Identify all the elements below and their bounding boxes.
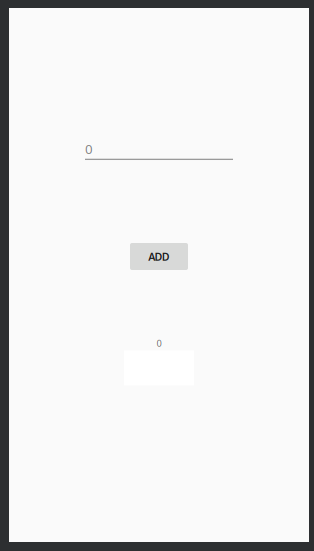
button[interactable]: ADD <box>130 243 188 270</box>
staticText: ADD <box>148 249 170 264</box>
staticText: 0 <box>156 337 161 349</box>
staticText: 0 <box>85 140 93 158</box>
button[interactable]: Number to add <box>85 140 233 160</box>
